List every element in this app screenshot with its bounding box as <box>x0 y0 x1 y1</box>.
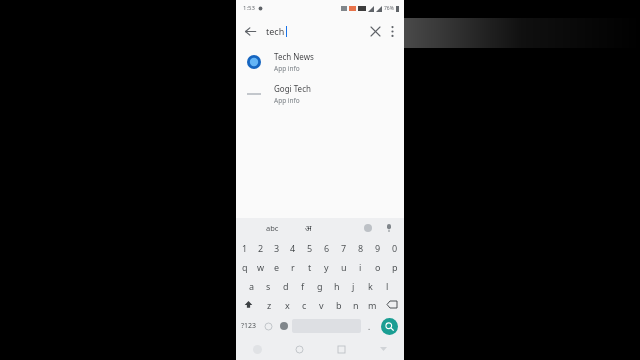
button[interactable]: l <box>379 276 396 295</box>
staticText: 0 <box>392 242 398 254</box>
button[interactable]: q <box>237 257 253 276</box>
button[interactable]: 0 <box>386 238 403 257</box>
staticText: d <box>283 280 289 292</box>
staticText: r <box>291 261 295 273</box>
staticText: y <box>324 261 329 273</box>
staticText: a <box>249 280 255 292</box>
button[interactable]: Tech News <box>236 46 404 78</box>
staticText: m <box>368 299 377 311</box>
button[interactable]: Clear <box>364 20 386 42</box>
staticText: w <box>257 261 265 273</box>
staticText: g <box>317 280 323 292</box>
button[interactable]: अ <box>305 222 312 234</box>
button[interactable]: y <box>318 257 335 276</box>
button[interactable]: Backspace <box>381 295 403 314</box>
button[interactable]: j <box>345 276 362 295</box>
button[interactable]: r <box>285 257 301 276</box>
button[interactable]: x <box>278 295 296 314</box>
button[interactable]: m <box>364 295 381 314</box>
button[interactable]: Help <box>362 222 374 234</box>
button[interactable]: Change language <box>276 314 292 338</box>
button[interactable]: Recents <box>320 338 362 360</box>
staticText: c <box>302 299 307 311</box>
button[interactable]: p <box>386 257 403 276</box>
button[interactable]: More options <box>383 22 401 40</box>
staticText: ?123 <box>241 321 257 331</box>
button[interactable]: Shift <box>237 295 260 314</box>
button[interactable]: 9 <box>369 238 386 257</box>
button[interactable]: s <box>260 276 277 295</box>
staticText: 8 <box>358 242 364 254</box>
button[interactable]: e <box>269 257 285 276</box>
button[interactable]: 8 <box>352 238 369 257</box>
staticText: Gogi Tech <box>274 83 311 94</box>
button[interactable]: 2 <box>253 238 269 257</box>
button[interactable]: Back <box>236 17 264 45</box>
staticText: 1:53 <box>243 4 255 12</box>
button[interactable]: Back <box>236 338 278 360</box>
staticText: l <box>386 280 389 292</box>
staticText: x <box>285 299 290 311</box>
button[interactable]: abc <box>266 223 279 233</box>
staticText: h <box>334 280 340 292</box>
staticText: 2 <box>258 242 264 254</box>
staticText: i <box>359 261 362 273</box>
staticText: 76% <box>384 5 394 12</box>
staticText: . <box>368 321 371 332</box>
staticText: v <box>319 299 324 311</box>
button[interactable]: g <box>311 276 328 295</box>
button[interactable]: n <box>347 295 364 314</box>
staticText: z <box>267 299 272 311</box>
button[interactable]: ?123 <box>238 314 260 338</box>
button[interactable]: w <box>253 257 269 276</box>
staticText: b <box>336 299 342 311</box>
button[interactable]: Gogi Tech <box>236 78 404 110</box>
button[interactable]: t <box>301 257 318 276</box>
button[interactable]: c <box>296 295 313 314</box>
button[interactable]: v <box>313 295 330 314</box>
button[interactable]: u <box>335 257 352 276</box>
button[interactable]: Home <box>278 338 320 360</box>
staticText: 5 <box>307 242 313 254</box>
button[interactable]: 7 <box>335 238 352 257</box>
staticText: 7 <box>341 242 347 254</box>
staticText: tech <box>266 25 285 37</box>
staticText: p <box>392 261 398 273</box>
button[interactable]: Keyboard toggle <box>362 338 404 360</box>
button[interactable]: a <box>244 276 260 295</box>
staticText: 6 <box>324 242 330 254</box>
staticText: 4 <box>290 242 296 254</box>
button[interactable]: b <box>330 295 347 314</box>
button[interactable]: Emoji <box>260 314 276 338</box>
button[interactable]: k <box>362 276 379 295</box>
button[interactable]: . <box>361 314 377 338</box>
staticText: App info <box>274 64 300 73</box>
staticText: App info <box>274 96 300 105</box>
button[interactable]: z <box>260 295 278 314</box>
button[interactable]: d <box>277 276 294 295</box>
staticText: u <box>341 261 347 273</box>
staticText: q <box>242 261 248 273</box>
button[interactable]: i <box>352 257 369 276</box>
button[interactable]: 6 <box>318 238 335 257</box>
button[interactable]: 1 <box>237 238 253 257</box>
button[interactable]: o <box>369 257 386 276</box>
button[interactable]: h <box>328 276 345 295</box>
button[interactable]: Search <box>377 314 402 338</box>
button[interactable]: 3 <box>269 238 285 257</box>
button[interactable]: Voice input <box>383 222 395 234</box>
staticText: 9 <box>375 242 381 254</box>
staticText: f <box>301 280 305 292</box>
staticText: 1 <box>242 242 248 254</box>
staticText: t <box>308 261 312 273</box>
staticText: j <box>352 280 355 292</box>
button[interactable]: f <box>294 276 311 295</box>
staticText: k <box>368 280 373 292</box>
staticText: e <box>274 261 280 273</box>
button[interactable]: 5 <box>301 238 318 257</box>
staticText: 3 <box>274 242 280 254</box>
staticText: s <box>266 280 271 292</box>
button[interactable]: 4 <box>285 238 301 257</box>
staticText: o <box>375 261 381 273</box>
